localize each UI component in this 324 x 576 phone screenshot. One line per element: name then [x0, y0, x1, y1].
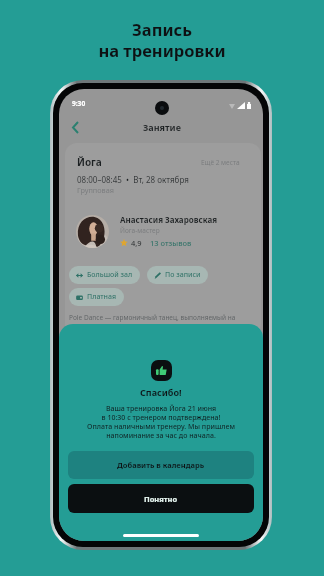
staticText: Йога-мастер: [120, 226, 160, 235]
staticText: Йога: [77, 155, 102, 169]
button[interactable]: Платная: [76, 292, 117, 302]
staticText: Анастасия Захаровская: [120, 214, 218, 225]
staticText: 08:00–08:45 • Вт, 28 октября: [77, 174, 189, 185]
button[interactable]: Добавить в календарь: [68, 451, 254, 479]
staticText: Понятно: [144, 494, 178, 504]
staticText: Запись на тренировки: [98, 18, 226, 62]
staticText: Занятие: [143, 121, 181, 133]
staticText: 4,9: [131, 238, 142, 248]
button[interactable]: Понятно: [68, 484, 254, 513]
staticText: Добавить в календарь: [117, 460, 205, 470]
button[interactable]: По записи: [154, 270, 201, 280]
button[interactable]: Back: [64, 116, 86, 138]
staticText: Групповая: [77, 185, 114, 195]
staticText: Большой зал: [87, 270, 133, 280]
button[interactable]: Большой зал: [76, 270, 133, 280]
staticText: Платная: [87, 292, 117, 302]
staticText: Спасибо!: [140, 386, 182, 398]
staticText: 9:30: [72, 99, 86, 108]
staticText: Pole Dance — гармоничный танец, выполняе…: [69, 313, 236, 322]
button[interactable]: 13 отзывов: [150, 238, 192, 248]
staticText: Ваша тренировка Йога 21 июня в 10:30 с т…: [87, 404, 235, 440]
staticText: Ещё 2 места: [201, 158, 240, 167]
staticText: По записи: [165, 270, 201, 280]
